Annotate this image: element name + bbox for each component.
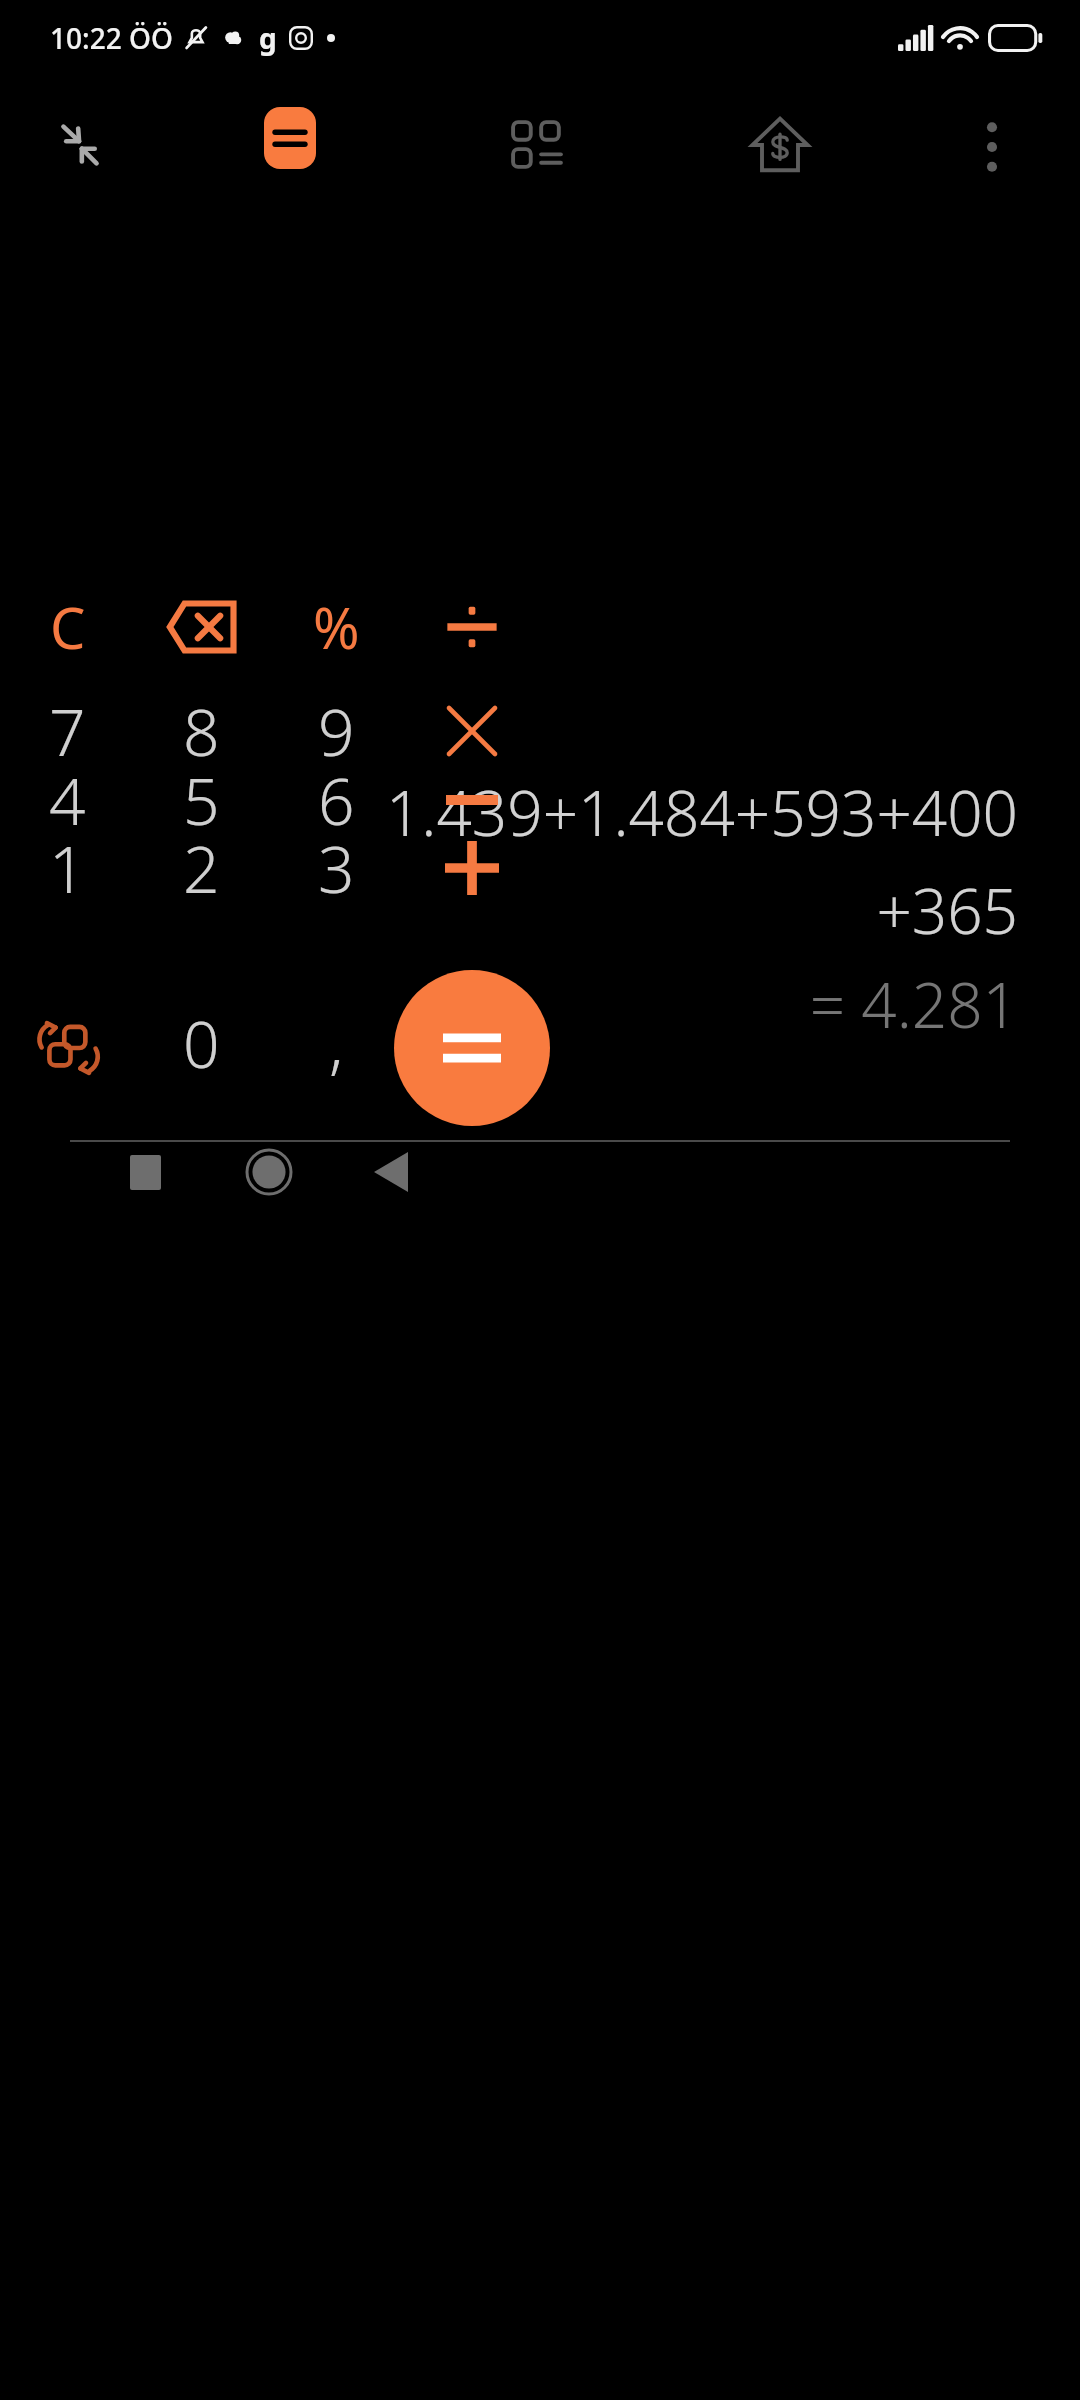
button[interactable]: 6 [294, 757, 379, 842]
staticText: 10:22 ÖÖ [50, 19, 173, 57]
staticText: 2 [183, 825, 220, 910]
button[interactable]: 2 [159, 825, 244, 910]
button[interactable]: % [299, 589, 374, 664]
button[interactable]: , [294, 1000, 379, 1085]
button[interactable]: 0 [159, 1000, 244, 1085]
button[interactable]: 3 [294, 825, 379, 910]
button[interactable]: Minus [429, 757, 514, 842]
button[interactable]: Equals [394, 970, 550, 1126]
staticText: +365 [60, 868, 1018, 952]
button[interactable]: 9 [294, 688, 379, 773]
staticText: C [50, 589, 86, 664]
staticText: 9 [318, 688, 355, 773]
staticText: 1 [49, 825, 86, 910]
button[interactable]: Multiply [429, 688, 514, 773]
staticText: 6 [318, 757, 355, 842]
staticText: 0 [183, 1000, 220, 1085]
button[interactable]: More options [955, 110, 1029, 184]
button[interactable]: 7 [25, 688, 110, 773]
button[interactable]: Home [233, 1136, 305, 1208]
staticText: 8 [183, 688, 220, 773]
button[interactable]: Plus [429, 825, 514, 910]
staticText: 3 [318, 825, 355, 910]
button[interactable]: Back [356, 1137, 426, 1207]
staticText: 4 [49, 757, 86, 842]
staticText: % [313, 589, 360, 664]
button[interactable]: Loan calculator [740, 105, 820, 185]
button[interactable]: 5 [159, 757, 244, 842]
staticText: g [259, 19, 277, 57]
button[interactable]: Collapse [45, 110, 115, 180]
button[interactable]: 1 [25, 825, 110, 910]
button[interactable]: Recent apps [110, 1137, 180, 1207]
button[interactable]: 4 [25, 757, 110, 842]
staticText: 1.439+1.484+593+400 [60, 770, 1018, 854]
button[interactable]: 8 [159, 688, 244, 773]
staticText: = 4.281 [60, 962, 1018, 1046]
button[interactable]: Layout [502, 110, 572, 180]
button[interactable]: Swap [25, 1005, 110, 1090]
button[interactable]: Backspace [164, 589, 239, 664]
staticText: 5 [183, 757, 220, 842]
button[interactable]: C [30, 589, 105, 664]
button[interactable]: Divide [434, 589, 509, 664]
staticText: , [329, 1000, 344, 1085]
staticText: 7 [49, 688, 86, 773]
button[interactable]: Equals mode [255, 103, 325, 173]
